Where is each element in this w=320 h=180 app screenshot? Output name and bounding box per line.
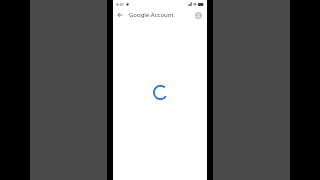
staticText: Google Account <box>129 11 174 19</box>
staticText: 9:41 <box>116 2 124 7</box>
button[interactable]: Account <box>193 10 203 20</box>
button[interactable]: Back <box>114 9 126 21</box>
